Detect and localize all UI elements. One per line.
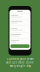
button[interactable]: Get started [9, 44, 30, 50]
staticText: and get more done [6, 61, 34, 64]
staticText: every single day [9, 64, 30, 68]
staticText: Connect your team [7, 57, 33, 61]
